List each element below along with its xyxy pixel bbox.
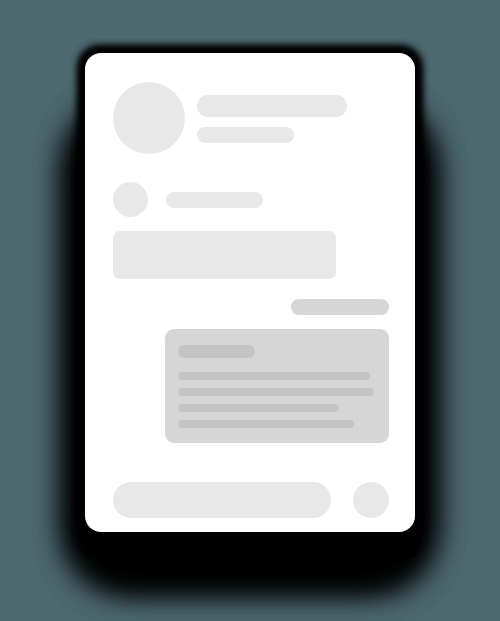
button[interactable]: Message input — [113, 482, 331, 518]
button[interactable]: Conversation participant — [101, 174, 281, 226]
button[interactable]: Send — [353, 482, 389, 518]
button[interactable]: Conversation header — [101, 71, 361, 167]
button[interactable]: Outgoing message — [165, 329, 389, 443]
